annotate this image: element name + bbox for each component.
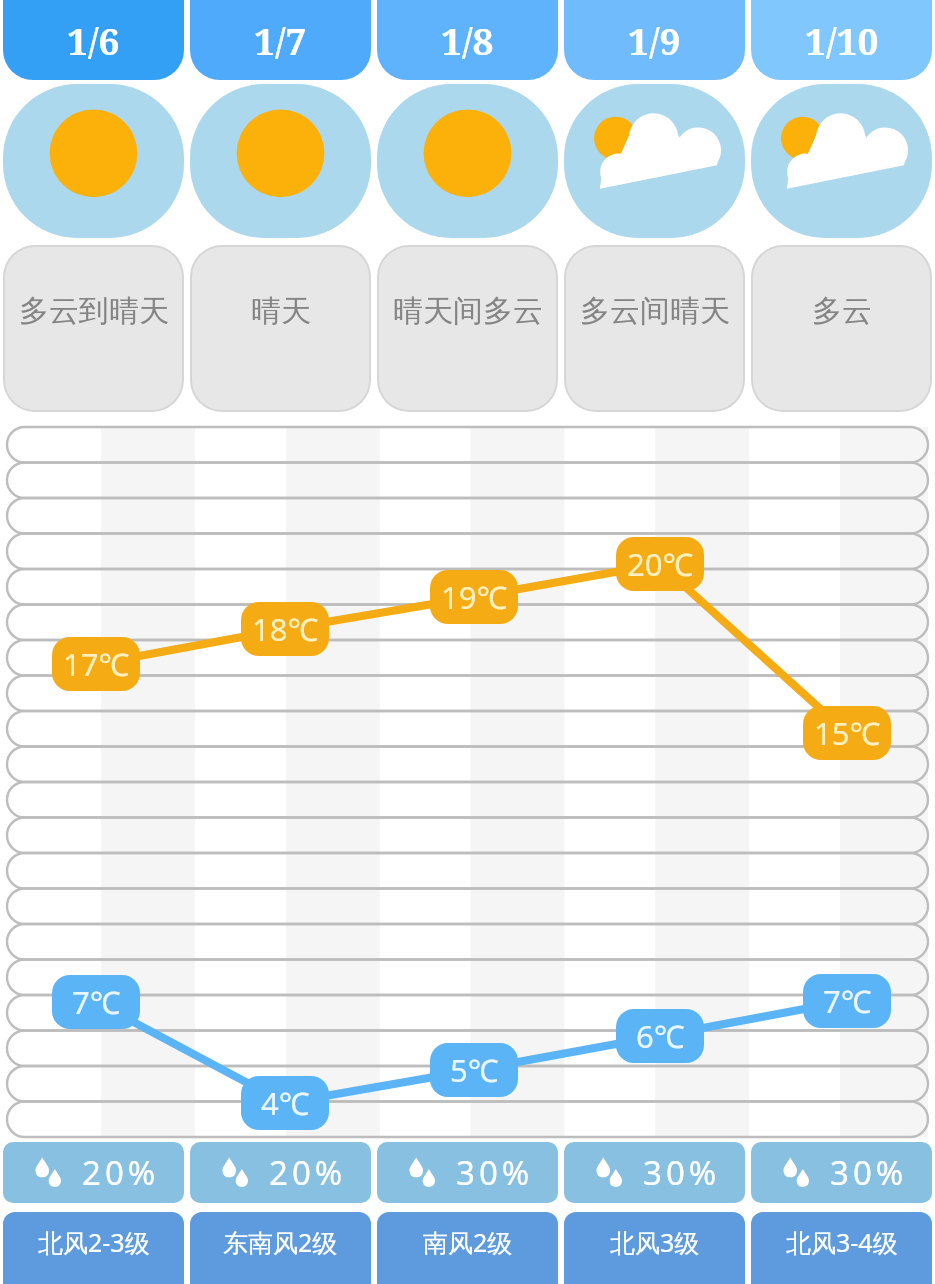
staticText: 17℃	[63, 643, 130, 685]
staticText: 晴天	[251, 292, 311, 330]
button[interactable]: 30%	[751, 1142, 932, 1203]
button[interactable]: 多云	[751, 245, 932, 412]
button[interactable]: 1/7	[190, 0, 371, 80]
button[interactable]: 18℃	[241, 602, 329, 656]
button[interactable]: 北风2-3级	[3, 1212, 184, 1284]
staticText: 18℃	[252, 608, 319, 650]
button[interactable]: 30%	[564, 1142, 745, 1203]
button[interactable]: 多云到晴天	[3, 245, 184, 412]
staticText: 北风3级	[610, 1225, 700, 1259]
staticText: 30%	[830, 1150, 908, 1195]
button[interactable]: 晴天	[190, 84, 371, 238]
staticText: 1/10	[805, 15, 879, 65]
button[interactable]: 南风2级	[377, 1212, 558, 1284]
button[interactable]: 1/10	[751, 0, 932, 80]
button[interactable]: 1/6	[3, 0, 184, 80]
staticText: 南风2级	[423, 1225, 513, 1259]
staticText: 多云	[812, 292, 872, 330]
button[interactable]: 多云到晴天	[3, 84, 184, 238]
staticText: 20%	[269, 1150, 347, 1195]
staticText: 晴天间多云	[393, 292, 543, 330]
staticText: 19℃	[441, 576, 508, 618]
button[interactable]: 晴天间多云	[377, 84, 558, 238]
staticText: 北风3-4级	[786, 1225, 898, 1259]
staticText: 5℃	[450, 1049, 499, 1091]
button[interactable]: 北风3级	[564, 1212, 745, 1284]
button[interactable]: 7℃	[52, 975, 140, 1029]
staticText: 30%	[643, 1150, 721, 1195]
button[interactable]: 多云间晴天	[564, 245, 745, 412]
staticText: 7℃	[823, 980, 872, 1022]
staticText: 20%	[82, 1150, 160, 1195]
button[interactable]: 5℃	[430, 1043, 518, 1097]
button[interactable]: 20%	[3, 1142, 184, 1203]
staticText: 1/9	[628, 15, 681, 65]
button[interactable]: 20%	[190, 1142, 371, 1203]
staticText: 20℃	[627, 543, 694, 585]
staticText: 东南风2级	[223, 1225, 338, 1259]
button[interactable]: 晴天	[190, 245, 371, 412]
button[interactable]: 北风3-4级	[751, 1212, 932, 1284]
button[interactable]: 20℃	[616, 537, 704, 591]
button[interactable]: 多云间晴天	[564, 84, 745, 238]
button[interactable]: 1/9	[564, 0, 745, 80]
staticText: 北风2-3级	[38, 1225, 150, 1259]
button[interactable]: 6℃	[616, 1009, 704, 1063]
button[interactable]: 19℃	[430, 570, 518, 624]
button[interactable]: 多云	[751, 84, 932, 238]
button[interactable]: 1/8	[377, 0, 558, 80]
staticText: 7℃	[72, 981, 121, 1023]
button[interactable]: 晴天间多云	[377, 245, 558, 412]
staticText: 15℃	[814, 712, 881, 754]
staticText: 1/7	[254, 15, 307, 65]
button[interactable]: 4℃	[241, 1076, 329, 1130]
button[interactable]: 17℃	[52, 637, 140, 691]
button[interactable]: 7℃	[803, 974, 891, 1028]
staticText: 多云到晴天	[19, 292, 169, 330]
staticText: 1/6	[67, 15, 120, 65]
staticText: 30%	[456, 1150, 534, 1195]
staticText: 4℃	[261, 1082, 310, 1124]
button[interactable]: 东南风2级	[190, 1212, 371, 1284]
button[interactable]: 15℃	[803, 706, 891, 760]
button[interactable]: 30%	[377, 1142, 558, 1203]
staticText: 1/8	[441, 15, 494, 65]
staticText: 多云间晴天	[580, 292, 730, 330]
staticText: 6℃	[636, 1015, 685, 1057]
